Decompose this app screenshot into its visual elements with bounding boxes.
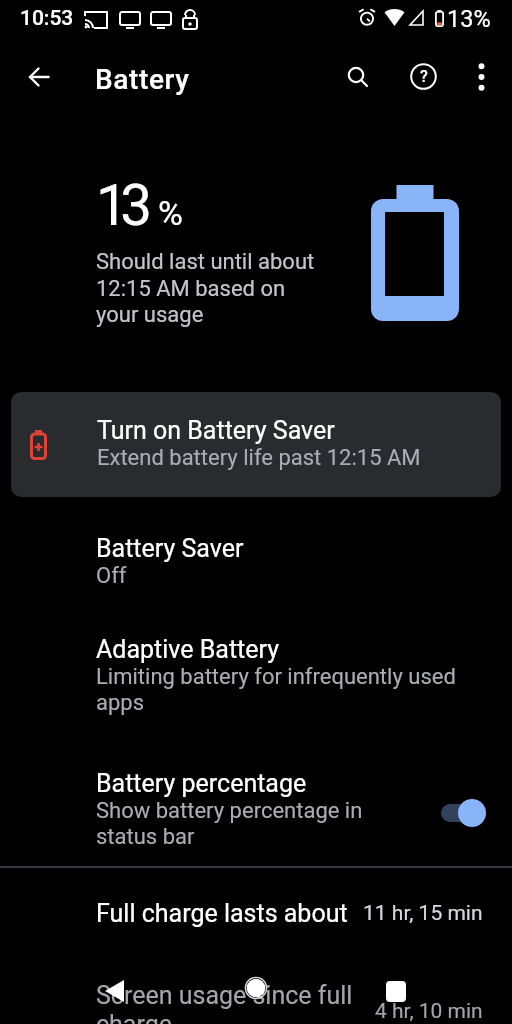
button[interactable]: Full charge lasts about xyxy=(0,899,512,928)
staticText: Extend battery life past 12:15 AM xyxy=(97,445,421,471)
staticText: Screen usage since full charge xyxy=(96,981,353,1024)
button[interactable] xyxy=(478,63,485,91)
staticText: 13 xyxy=(96,173,145,239)
staticText: Full charge lasts about xyxy=(96,899,348,928)
staticText: Turn on Battery Saver xyxy=(97,416,335,445)
button[interactable] xyxy=(441,799,486,827)
staticText: 10:53 xyxy=(20,6,74,31)
button[interactable]: ? xyxy=(410,63,437,90)
staticText: Limiting battery for infrequently used a… xyxy=(96,664,456,716)
staticText: Should last until about 12:15 AM based o… xyxy=(96,249,315,327)
staticText: Battery percentage xyxy=(96,769,307,798)
button[interactable]: Battery Saver xyxy=(0,534,512,589)
staticText: Show battery percentage in status bar xyxy=(96,798,363,850)
staticText: 11 hr, 15 min xyxy=(363,901,483,926)
staticText: Adaptive Battery xyxy=(96,635,280,664)
staticText: Off xyxy=(96,563,127,589)
button[interactable] xyxy=(386,981,406,1002)
staticText: Battery Saver xyxy=(96,534,244,563)
staticText: ? xyxy=(420,67,428,86)
button[interactable] xyxy=(27,65,51,89)
button[interactable] xyxy=(346,65,370,89)
button[interactable] xyxy=(245,977,267,999)
staticText: Battery xyxy=(95,63,190,96)
staticText: 13% xyxy=(447,5,491,33)
button[interactable]: Adaptive Battery xyxy=(0,635,512,716)
button[interactable]: Screen usage since full charge xyxy=(0,981,512,1024)
staticText: % xyxy=(158,193,183,233)
staticText: 4 hr, 10 min xyxy=(375,999,483,1024)
button[interactable] xyxy=(105,980,124,1002)
button[interactable]: Battery percentage xyxy=(0,769,512,850)
button[interactable]: Turn on Battery Saver xyxy=(11,392,501,497)
